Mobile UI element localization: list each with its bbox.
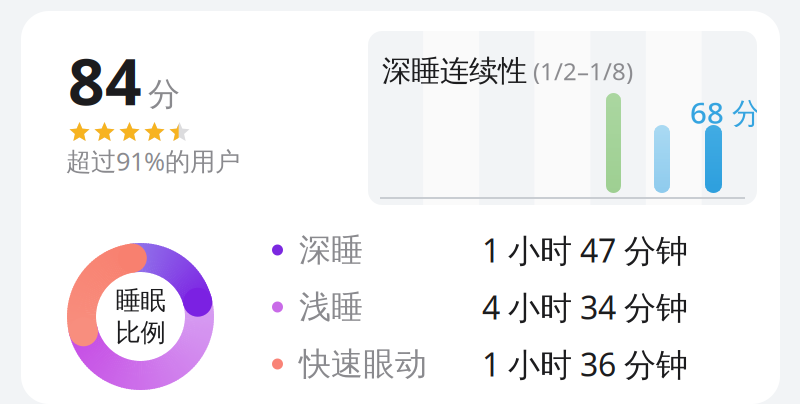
staticText: 浅睡 — [299, 287, 363, 327]
staticText: (1/2–1/8) — [527, 55, 633, 87]
staticText: 比例 — [115, 317, 165, 348]
staticText: 1 小时 36 分钟 — [482, 343, 688, 385]
staticText: 快速眼动 — [299, 344, 427, 384]
staticText: 深睡 — [299, 230, 363, 270]
staticText: 68 分 — [690, 93, 761, 132]
staticText: 4 小时 34 分钟 — [482, 286, 688, 328]
staticText: 超过91%的用户 — [66, 144, 240, 178]
staticText: 84 — [68, 38, 142, 123]
staticText: 睡眠 — [115, 285, 165, 316]
staticText: 分 — [148, 75, 180, 114]
staticText: 1 小时 47 分钟 — [482, 229, 688, 271]
staticText: 深睡连续性 — [382, 53, 527, 89]
